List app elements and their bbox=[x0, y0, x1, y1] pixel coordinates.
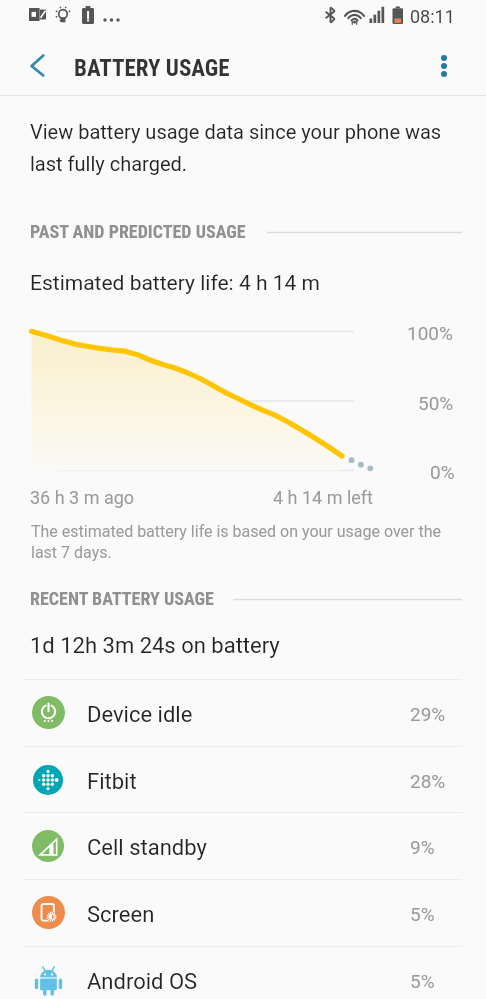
staticText: 5% bbox=[410, 903, 435, 925]
staticText: 36 h 3 m ago bbox=[30, 487, 135, 508]
staticText: 0% bbox=[430, 461, 455, 483]
staticText: View battery usage data since your phone… bbox=[30, 120, 442, 143]
staticText: last fully charged. bbox=[30, 152, 188, 175]
staticText: 100% bbox=[407, 322, 453, 344]
staticText: BATTERY USAGE bbox=[74, 55, 230, 82]
staticText: 5% bbox=[410, 970, 435, 992]
staticText: PAST AND PREDICTED USAGE bbox=[30, 221, 246, 242]
button[interactable]: Fitbit bbox=[0, 746, 486, 813]
button[interactable]: Android OS bbox=[0, 946, 486, 999]
button[interactable]: Device idle bbox=[0, 679, 486, 746]
staticText: RECENT BATTERY USAGE bbox=[30, 588, 214, 609]
button[interactable]: Cell standby bbox=[0, 812, 486, 879]
button[interactable]: Navigate up bbox=[12, 40, 64, 92]
staticText: Cell standby bbox=[87, 835, 207, 861]
staticText: 9% bbox=[410, 836, 435, 858]
button[interactable]: More options bbox=[418, 40, 470, 92]
staticText: The estimated battery life is based on y… bbox=[31, 522, 442, 541]
staticText: Fitbit bbox=[87, 769, 137, 795]
staticText: last 7 days. bbox=[31, 543, 112, 562]
staticText: 28% bbox=[410, 770, 446, 792]
staticText: Android OS bbox=[87, 969, 198, 995]
staticText: Device idle bbox=[87, 702, 193, 728]
staticText: 29% bbox=[410, 703, 446, 725]
staticText: Estimated battery life: 4 h 14 m bbox=[30, 271, 320, 296]
staticText: 1d 12h 3m 24s on battery bbox=[30, 633, 280, 659]
staticText: 4 h 14 m left bbox=[273, 487, 373, 508]
button[interactable]: Screen bbox=[0, 879, 486, 946]
staticText: 50% bbox=[418, 392, 454, 414]
staticText: 08:11 bbox=[410, 6, 455, 27]
staticText: Screen bbox=[87, 902, 155, 928]
